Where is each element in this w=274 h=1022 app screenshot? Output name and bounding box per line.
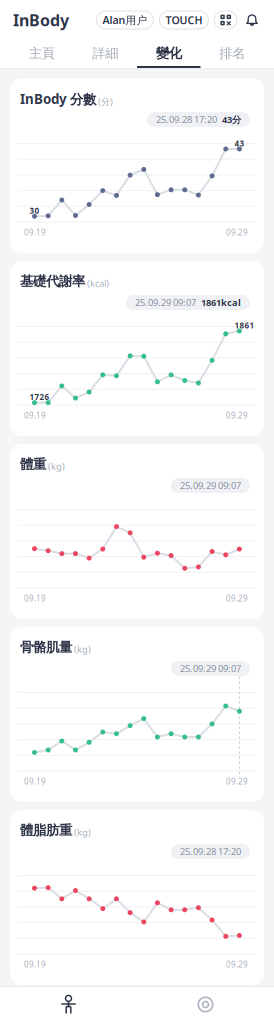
staticText: 25.09.29 09:07 <box>135 296 196 309</box>
staticText: InBody <box>13 9 69 31</box>
staticText: 25.09.29 09:07 <box>180 662 241 675</box>
staticText: InBody 分數 <box>20 90 96 108</box>
staticText: 09.29 <box>226 959 248 970</box>
staticText: 30 <box>29 205 39 216</box>
staticText: 骨骼肌量 <box>20 639 72 655</box>
staticText: 43分 <box>222 113 241 126</box>
staticText: 25.09.29 09:07 <box>180 479 241 492</box>
staticText: 09.29 <box>226 776 248 787</box>
staticText: 1861 <box>234 320 254 331</box>
button[interactable]: Scan QR code <box>214 11 237 29</box>
staticText: 排名 <box>219 45 245 61</box>
staticText: (kg) <box>74 826 91 838</box>
button[interactable]: 變化 <box>137 40 200 68</box>
staticText: 09.19 <box>24 410 46 421</box>
button[interactable]: 主頁 <box>10 40 73 68</box>
staticText: 基礎代謝率 <box>20 273 85 289</box>
button[interactable]: 排名 <box>200 40 264 68</box>
staticText: 09.19 <box>24 593 46 604</box>
staticText: 詳細 <box>92 45 118 61</box>
staticText: 25.09.28 17:20 <box>156 113 217 126</box>
staticText: 09.29 <box>226 227 248 238</box>
staticText: 變化 <box>156 45 182 61</box>
staticText: Alan用户 <box>102 13 147 27</box>
staticText: (kg) <box>48 460 65 472</box>
staticText: (kcal) <box>87 277 109 289</box>
button[interactable]: Alan用户 <box>96 11 153 29</box>
staticText: 體脂肪重 <box>20 822 72 838</box>
button[interactable]: Notifications <box>243 11 261 29</box>
staticText: 43 <box>234 138 244 149</box>
button[interactable]: 詳細 <box>73 40 137 68</box>
staticText: (分) <box>98 95 113 108</box>
staticText: 1726 <box>29 392 49 402</box>
staticText: 09.19 <box>24 227 46 238</box>
staticText: 體重 <box>20 456 46 472</box>
staticText: 1861kcal <box>201 296 241 309</box>
staticText: 25.09.28 17:20 <box>180 845 241 858</box>
staticText: 09.29 <box>226 593 248 604</box>
button[interactable]: Body composition <box>0 987 137 1022</box>
staticText: 09.29 <box>226 410 248 421</box>
staticText: 09.19 <box>24 959 46 970</box>
staticText: 主頁 <box>29 45 55 61</box>
staticText: (kg) <box>74 643 91 655</box>
staticText: 09.19 <box>24 776 46 787</box>
button[interactable]: TOUCH <box>159 11 208 29</box>
button[interactable]: Settings <box>137 987 274 1021</box>
staticText: TOUCH <box>165 13 202 27</box>
